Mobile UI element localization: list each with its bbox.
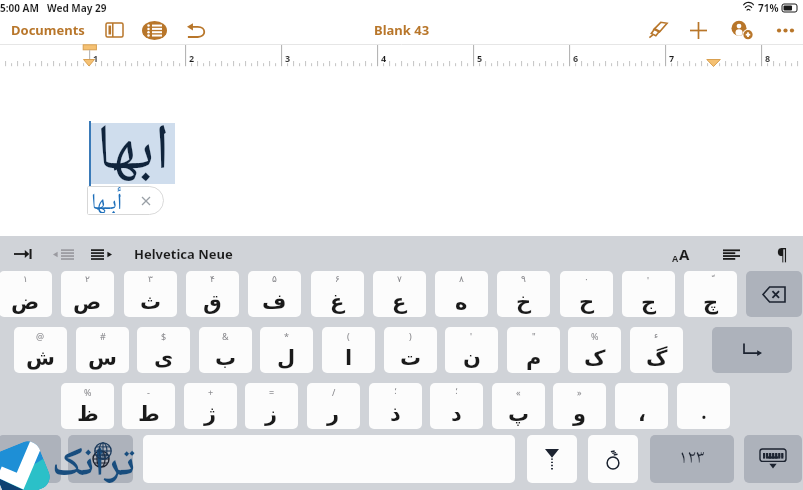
- button[interactable]: Return: [712, 327, 792, 373]
- staticText: ع: [392, 290, 407, 314]
- button[interactable]: %: [568, 327, 621, 373]
- button[interactable]: Markup: [645, 17, 671, 43]
- staticText: @: [36, 330, 45, 342]
- button[interactable]: ۸: [435, 271, 488, 317]
- button[interactable]: Undo: [183, 17, 209, 43]
- staticText: 71%: [758, 1, 779, 15]
- button[interactable]: Globe: [68, 435, 133, 483]
- staticText: *: [284, 330, 289, 342]
- staticText: 5:00 AM: [0, 1, 39, 15]
- button[interactable]: ۰: [560, 271, 613, 317]
- staticText: ط: [138, 402, 160, 426]
- button[interactable]: *: [260, 327, 313, 373]
- staticText: ژ: [204, 402, 217, 426]
- button[interactable]: »: [553, 383, 606, 429]
- button[interactable]: Numbers: [650, 435, 734, 483]
- staticText: ن: [463, 346, 481, 370]
- button[interactable]: Tab: [10, 241, 36, 267]
- staticText: ۲: [85, 274, 90, 284]
- button[interactable]: =: [245, 383, 298, 429]
- button[interactable]: Hide keyboard: [744, 435, 802, 483]
- staticText: Blank 43: [374, 21, 430, 39]
- button[interactable]: ؛: [430, 383, 483, 429]
- button[interactable]: %: [61, 383, 114, 429]
- button[interactable]: More: [772, 17, 798, 43]
- staticText: 4: [381, 52, 387, 64]
- button[interactable]: Helvetica Neue: [130, 241, 237, 267]
- button[interactable]: أبـها: [87, 186, 164, 215]
- button[interactable]: ۴: [186, 271, 239, 317]
- staticText: ،: [638, 402, 646, 426]
- staticText: ش: [26, 346, 55, 370]
- button[interactable]: Add: [685, 17, 711, 43]
- button[interactable]: +: [184, 383, 237, 429]
- staticText: ث: [140, 290, 162, 314]
- button[interactable]: ۲: [61, 271, 114, 317]
- button[interactable]: ،: [615, 383, 668, 429]
- staticText: ': [470, 330, 473, 342]
- button[interactable]: /: [307, 383, 360, 429]
- staticText: خ: [516, 290, 532, 314]
- staticText: ابها: [90, 100, 176, 209]
- button[interactable]: &: [199, 327, 252, 373]
- button[interactable]: $: [137, 327, 190, 373]
- staticText: .: [701, 397, 707, 426]
- button[interactable]: Dictation: [588, 435, 638, 483]
- button[interactable]: Increase indent: [88, 241, 114, 267]
- staticText: ): [409, 330, 412, 342]
- button[interactable]: ۳: [124, 271, 177, 317]
- button[interactable]: Backspace: [746, 271, 802, 317]
- button[interactable]: Outline: [141, 17, 168, 44]
- staticText: س: [88, 346, 117, 370]
- button[interactable]: @: [14, 327, 67, 373]
- button[interactable]: ): [384, 327, 437, 373]
- button[interactable]: ۵: [248, 271, 301, 317]
- button[interactable]: ۶: [311, 271, 364, 317]
- button[interactable]: ': [622, 271, 675, 317]
- button[interactable]: «: [492, 383, 545, 429]
- button[interactable]: Collaborate: [729, 17, 755, 43]
- staticText: /: [332, 386, 336, 398]
- button[interactable]: Alignment: [718, 241, 744, 267]
- button[interactable]: -: [122, 383, 175, 429]
- button[interactable]: ۹: [497, 271, 550, 317]
- staticText: ترانک: [52, 432, 135, 490]
- staticText: »: [577, 386, 582, 398]
- staticText: ق: [203, 290, 222, 314]
- button[interactable]: Format: [527, 435, 577, 483]
- button[interactable]: Text size: [666, 239, 696, 269]
- staticText: ۱۲۳: [679, 443, 705, 475]
- button[interactable]: ': [445, 327, 498, 373]
- staticText: د: [451, 402, 462, 426]
- staticText: A: [672, 252, 679, 264]
- staticText: &: [222, 330, 229, 342]
- staticText: ۰: [584, 274, 589, 284]
- button[interactable]: ء: [630, 327, 683, 373]
- button[interactable]: (: [322, 327, 375, 373]
- staticText: ء: [654, 330, 659, 340]
- staticText: ل: [277, 346, 296, 370]
- button[interactable]: Decrease indent: [50, 241, 76, 267]
- staticText: 1: [93, 52, 99, 64]
- button[interactable]: #: [76, 327, 129, 373]
- staticText: ر: [327, 402, 340, 426]
- button[interactable]: Split view: [101, 17, 127, 43]
- button[interactable]: .: [677, 383, 730, 429]
- button[interactable]: Documents: [7, 17, 89, 43]
- staticText: م: [526, 346, 542, 370]
- staticText: 5: [477, 52, 483, 64]
- staticText: 7: [669, 52, 675, 64]
- button[interactable]: ۱: [0, 271, 52, 317]
- staticText: ح: [579, 290, 595, 314]
- button[interactable]: Paragraph marks: [769, 241, 795, 267]
- button[interactable]: ؛: [369, 383, 422, 429]
- button[interactable]: ": [507, 327, 560, 373]
- button[interactable]: Emoji: [0, 435, 61, 483]
- button[interactable]: ۷: [373, 271, 426, 317]
- staticText: Helvetica Neue: [134, 245, 233, 263]
- staticText: أبـها: [91, 186, 123, 213]
- staticText: Wed May 29: [47, 1, 107, 15]
- button[interactable]: ّ: [684, 271, 737, 317]
- staticText: ف: [262, 290, 287, 314]
